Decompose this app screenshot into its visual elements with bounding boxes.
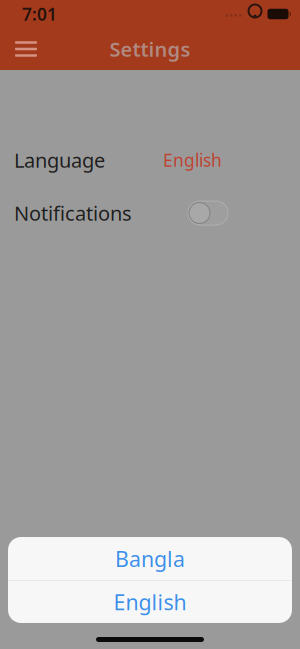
staticText: Language <box>14 147 105 173</box>
staticText: English <box>113 588 186 616</box>
button[interactable]: Notifications toggle <box>188 201 286 225</box>
staticText: 7:01 <box>22 2 57 25</box>
button[interactable]: Menu <box>0 31 52 67</box>
staticText: Bangla <box>115 544 185 573</box>
button[interactable]: Bangla <box>8 537 292 580</box>
staticText: Settings <box>109 36 190 62</box>
button[interactable]: English <box>8 581 292 623</box>
staticText: Notifications <box>14 200 132 226</box>
button[interactable]: Language <box>0 146 300 174</box>
staticText: English <box>163 148 222 171</box>
